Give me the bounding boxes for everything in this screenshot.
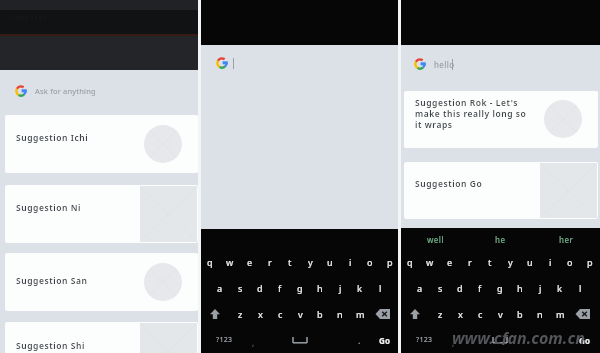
button[interactable]: well [415, 230, 455, 248]
staticText: k [557, 282, 563, 294]
button[interactable]: l [370, 275, 390, 301]
button[interactable]: j [530, 275, 550, 301]
button[interactable]: u [320, 249, 340, 275]
button[interactable]: b [310, 301, 330, 327]
button[interactable]: w [420, 249, 440, 275]
button[interactable]: u [520, 249, 540, 275]
staticText: s [438, 282, 443, 294]
button[interactable]: l [570, 275, 590, 301]
button[interactable]: n [530, 301, 550, 327]
button[interactable]: . [354, 331, 364, 349]
staticText: g [297, 282, 303, 294]
staticText: Suggestion Go [415, 178, 483, 190]
button[interactable]: a [410, 275, 430, 301]
button[interactable]: m [550, 301, 570, 327]
staticText: c [278, 308, 283, 320]
button[interactable]: her [546, 230, 586, 248]
button[interactable] [570, 301, 596, 327]
button[interactable] [404, 91, 598, 148]
button[interactable] [201, 48, 399, 80]
button[interactable]: q [400, 249, 420, 275]
button[interactable]: d [450, 275, 470, 301]
button[interactable]: k [350, 275, 370, 301]
staticText: well [427, 234, 444, 245]
button[interactable]: x [250, 301, 270, 327]
button[interactable]: r [260, 249, 280, 275]
button[interactable]: b [510, 301, 530, 327]
staticText: u [327, 256, 333, 268]
button[interactable]: y [500, 249, 520, 275]
button[interactable]: x [450, 301, 470, 327]
button[interactable] [260, 327, 340, 353]
button[interactable]: z [430, 301, 450, 327]
button[interactable] [5, 115, 198, 173]
button[interactable] [370, 301, 396, 327]
button[interactable]: g [290, 275, 310, 301]
button[interactable]: r [460, 249, 480, 275]
button[interactable]: f [470, 275, 490, 301]
button[interactable]: f [270, 275, 290, 301]
button[interactable] [460, 327, 540, 353]
button[interactable]: ?123 [404, 331, 444, 349]
button[interactable]: z [230, 301, 250, 327]
staticText: l [579, 282, 582, 294]
button[interactable] [5, 322, 198, 353]
button[interactable]: q [200, 249, 220, 275]
button[interactable]: p [580, 249, 600, 275]
button[interactable]: t [280, 249, 300, 275]
staticText: u [527, 256, 533, 268]
button[interactable]: s [230, 275, 250, 301]
staticText: o [367, 256, 373, 268]
button[interactable]: i [540, 249, 560, 275]
button[interactable]: e [240, 249, 260, 275]
button[interactable]: h [310, 275, 330, 301]
button[interactable] [5, 253, 198, 311]
button[interactable]: Go [370, 331, 400, 349]
button[interactable]: c [270, 301, 290, 327]
button[interactable]: o [560, 249, 580, 275]
staticText: Suggestion Rok - Let's [415, 97, 518, 109]
staticText: p [587, 256, 593, 268]
staticText: a [417, 282, 423, 294]
button[interactable]: d [250, 275, 270, 301]
staticText: n [537, 308, 543, 320]
button[interactable] [0, 75, 198, 107]
button[interactable]: c [470, 301, 490, 327]
button[interactable]: o [360, 249, 380, 275]
button[interactable]: a [210, 275, 230, 301]
staticText: x [258, 308, 263, 320]
staticText: a [217, 282, 223, 294]
button[interactable]: s [430, 275, 450, 301]
button[interactable]: y [300, 249, 320, 275]
button[interactable]: w [220, 249, 240, 275]
button[interactable] [5, 185, 198, 243]
button[interactable]: Go [570, 331, 600, 349]
button[interactable]: , [248, 333, 258, 351]
button[interactable]: ?123 [204, 331, 244, 349]
button[interactable]: k [550, 275, 570, 301]
button[interactable] [202, 301, 228, 327]
button[interactable]: n [330, 301, 350, 327]
button[interactable]: , [448, 333, 458, 351]
staticText: y [508, 256, 513, 268]
staticText: c [478, 308, 483, 320]
button[interactable]: g [490, 275, 510, 301]
button[interactable]: v [490, 301, 510, 327]
staticText: d [457, 282, 463, 294]
button[interactable]: p [380, 249, 400, 275]
button[interactable]: j [330, 275, 350, 301]
staticText: make this really long so [415, 108, 527, 120]
button[interactable]: he [480, 230, 520, 248]
button[interactable]: h [510, 275, 530, 301]
button[interactable] [401, 48, 600, 80]
staticText: b [517, 308, 523, 320]
staticText: f [478, 282, 482, 294]
button[interactable]: . [554, 331, 564, 349]
button[interactable]: e [440, 249, 460, 275]
button[interactable] [404, 162, 598, 219]
button[interactable]: m [350, 301, 370, 327]
button[interactable] [402, 301, 428, 327]
button[interactable]: v [290, 301, 310, 327]
button[interactable]: t [480, 249, 500, 275]
button[interactable]: i [340, 249, 360, 275]
